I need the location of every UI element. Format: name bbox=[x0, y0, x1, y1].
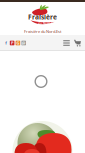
button[interactable]: Email bbox=[21, 41, 26, 45]
staticText: Fraisière bbox=[28, 13, 57, 21]
button[interactable]: Menu bbox=[61, 35, 72, 51]
button[interactable]: Pinterest bbox=[10, 41, 14, 45]
staticText: G bbox=[16, 40, 19, 46]
staticText: du Nord-Est bbox=[38, 22, 54, 25]
staticText: P bbox=[11, 40, 13, 46]
staticText: f bbox=[5, 40, 7, 46]
staticText: Fraisière du Nord-Est bbox=[24, 29, 61, 34]
button[interactable]: Cart bbox=[72, 35, 83, 51]
button[interactable]: Google Plus bbox=[16, 41, 20, 45]
staticText: @ bbox=[22, 40, 26, 46]
button[interactable]: Facebook bbox=[4, 41, 9, 45]
